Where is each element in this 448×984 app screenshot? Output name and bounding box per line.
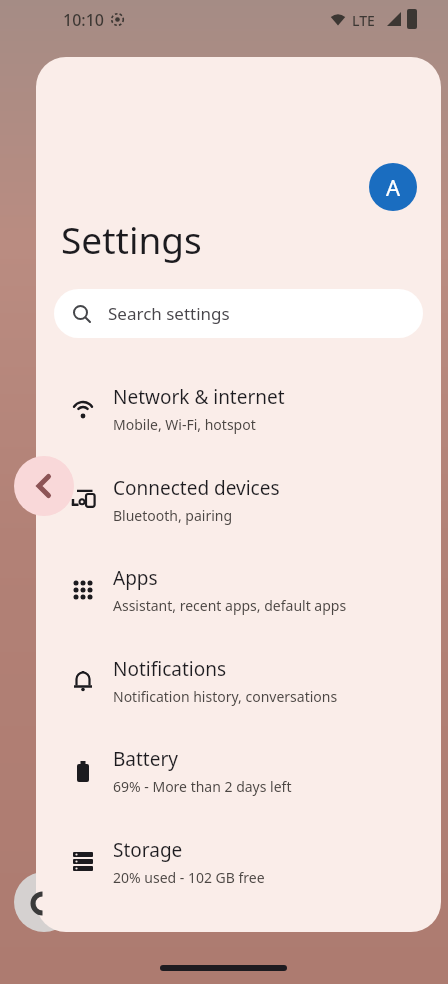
button[interactable]: Network & internet — [36, 364, 441, 454]
staticText: Search settings — [108, 302, 230, 325]
staticText: 20% used - 102 GB free — [113, 868, 265, 887]
staticText: 10:10 — [63, 9, 104, 31]
button[interactable] — [14, 456, 74, 516]
staticText: LTE — [352, 11, 375, 30]
button[interactable]: Search settings — [54, 289, 423, 338]
staticText: Connected devices — [113, 475, 280, 501]
staticText: Notifications — [113, 656, 227, 682]
button[interactable]: Connected devices — [36, 455, 441, 545]
staticText: Assistant, recent apps, default apps — [113, 596, 347, 615]
staticText: Mobile, Wi-Fi, hotspot — [113, 415, 256, 434]
button[interactable]: Notifications — [36, 636, 441, 726]
staticText: Settings — [61, 214, 202, 264]
staticText: Storage — [113, 837, 183, 863]
button[interactable]: Storage — [36, 817, 441, 907]
staticText: A — [386, 172, 401, 202]
staticText: Notification history, conversations — [113, 687, 338, 706]
staticText: Network & internet — [113, 384, 285, 410]
button[interactable]: Battery — [36, 726, 441, 816]
button[interactable]: Apps — [36, 545, 441, 635]
staticText: Apps — [113, 565, 158, 591]
staticText: 69% - More than 2 days left — [113, 777, 292, 796]
button[interactable]: A — [369, 163, 417, 211]
staticText: Battery — [113, 746, 178, 772]
staticText: Bluetooth, pairing — [113, 506, 233, 525]
